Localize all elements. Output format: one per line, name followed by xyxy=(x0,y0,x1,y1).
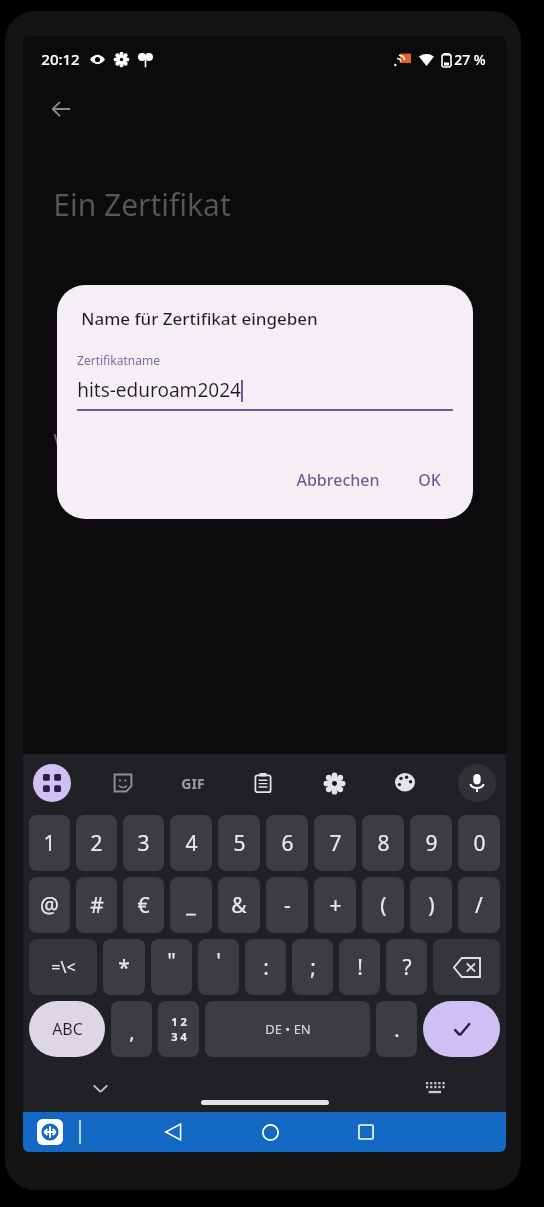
staticText: =\< xyxy=(51,956,76,978)
staticText: + xyxy=(329,891,342,920)
button[interactable]: # xyxy=(76,877,117,933)
staticText: 20:12 xyxy=(41,49,80,69)
staticText: ? xyxy=(402,953,412,982)
button[interactable]: Enter xyxy=(423,1001,500,1057)
button[interactable]: 1 xyxy=(29,815,70,871)
button[interactable]: Abbrechen xyxy=(286,461,390,499)
staticText: Abbrechen xyxy=(296,469,380,491)
button[interactable]: * xyxy=(103,939,145,995)
button[interactable]: - xyxy=(266,877,308,933)
staticText: Zertifikatname xyxy=(77,352,160,368)
staticText: , xyxy=(129,1018,135,1045)
staticText: 7 xyxy=(329,829,342,858)
staticText: ABC xyxy=(52,1018,83,1040)
button[interactable]: ' xyxy=(198,939,239,995)
staticText: DE • EN xyxy=(265,1020,311,1038)
staticText: 8 xyxy=(377,829,390,858)
staticText: * xyxy=(118,953,130,982)
staticText: hits-eduroam2024 xyxy=(77,377,241,403)
staticText: 3 xyxy=(137,829,150,858)
staticText: € xyxy=(137,891,150,920)
button[interactable]: . xyxy=(376,1001,417,1057)
button[interactable]: 8 xyxy=(362,815,404,871)
staticText: _ xyxy=(186,890,196,919)
staticText: Ein Zertifikat xyxy=(53,184,231,225)
staticText: GIF xyxy=(181,774,205,793)
staticText: 9 xyxy=(425,829,438,858)
staticText: . xyxy=(394,1016,400,1043)
button[interactable]: Theme xyxy=(387,765,423,801)
staticText: WLAN-Zertifikat xyxy=(53,427,202,454)
button[interactable]: € xyxy=(123,877,164,933)
staticText: # xyxy=(90,891,104,920)
staticText: OK xyxy=(418,469,441,491)
button[interactable]: ( xyxy=(362,877,404,933)
button[interactable]: Numbers xyxy=(158,1001,199,1057)
button[interactable]: @ xyxy=(29,877,70,933)
staticText: " xyxy=(167,947,176,976)
button[interactable]: ? xyxy=(386,939,427,995)
staticText: ' xyxy=(216,947,221,976)
staticText: - xyxy=(284,891,291,920)
button[interactable]: 7 xyxy=(314,815,356,871)
button[interactable]: OK xyxy=(408,461,451,499)
button[interactable]: Home xyxy=(253,1115,287,1149)
button[interactable]: Back xyxy=(156,1115,190,1149)
staticText: ! xyxy=(357,953,363,982)
staticText: 1 xyxy=(43,829,56,858)
staticText: 3 4 xyxy=(171,1029,187,1044)
staticText: 5 xyxy=(233,829,246,858)
button[interactable]: Menu xyxy=(33,764,71,802)
staticText: Name für Zertifikat eingeben xyxy=(81,307,318,330)
staticText: : xyxy=(263,953,269,982)
button[interactable]: 4 xyxy=(170,815,212,871)
staticText: 2 xyxy=(90,829,103,858)
staticText: @ xyxy=(40,891,59,920)
button[interactable]: " xyxy=(151,939,192,995)
button[interactable]: / xyxy=(458,877,500,933)
staticText: 6 xyxy=(281,829,294,858)
button[interactable]: GIF xyxy=(175,768,211,799)
button[interactable]: Clipboard xyxy=(245,765,281,801)
button[interactable]: 6 xyxy=(266,815,308,871)
button[interactable]: : xyxy=(245,939,286,995)
button[interactable]: Zertifikatname xyxy=(77,352,453,411)
button[interactable]: Switch keyboard xyxy=(421,1073,451,1103)
button[interactable]: 9 xyxy=(410,815,452,871)
button[interactable]: Hide keyboard xyxy=(85,1073,115,1103)
button[interactable]: 3 xyxy=(123,815,164,871)
button[interactable]: & xyxy=(218,877,260,933)
button[interactable]: ! xyxy=(339,939,380,995)
staticText: 4 xyxy=(185,829,198,858)
button[interactable]: 0 xyxy=(458,815,500,871)
button[interactable]: , xyxy=(111,1001,152,1057)
staticText: & xyxy=(231,891,247,920)
button[interactable]: ABC xyxy=(29,1001,105,1057)
staticText: 27 % xyxy=(454,50,486,69)
button[interactable]: 5 xyxy=(218,815,260,871)
staticText: / xyxy=(475,891,483,920)
button[interactable]: Back xyxy=(39,87,83,131)
button[interactable]: Settings xyxy=(316,765,352,801)
button[interactable]: ; xyxy=(292,939,333,995)
button[interactable]: DE • EN xyxy=(205,1001,370,1057)
staticText: ) xyxy=(428,891,435,920)
staticText: ( xyxy=(380,891,387,920)
button[interactable]: + xyxy=(314,877,356,933)
button[interactable]: ) xyxy=(410,877,452,933)
button[interactable]: 2 xyxy=(76,815,117,871)
button[interactable]: Sticker xyxy=(105,765,141,801)
button[interactable]: Backspace xyxy=(433,939,500,995)
button[interactable]: Voice input xyxy=(458,764,496,802)
staticText: 1 2 xyxy=(171,1014,187,1029)
staticText: 0 xyxy=(473,829,486,858)
button[interactable]: _ xyxy=(170,877,212,933)
button[interactable]: TeamViewer xyxy=(37,1119,63,1145)
button[interactable]: Recents xyxy=(349,1115,383,1149)
staticText: ; xyxy=(310,953,316,982)
button[interactable]: =\< xyxy=(29,939,97,995)
